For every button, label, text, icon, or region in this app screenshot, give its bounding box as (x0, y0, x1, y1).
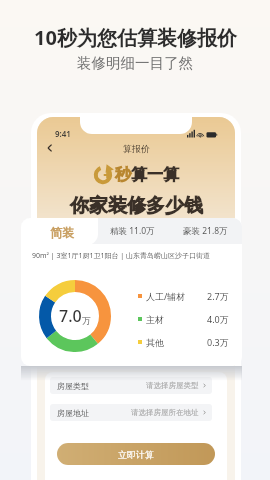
staticText: 精装 11.0万 (110, 225, 155, 237)
button[interactable]: 精装 11.0万 (96, 218, 169, 244)
staticText: 请选择房屋所在地址 (131, 408, 199, 417)
staticText: 90m² | 3室1厅1厨1卫1阳台 | 山东青岛崂山区沙子口街道 (32, 251, 211, 261)
button[interactable]: 房屋类型 (50, 377, 212, 394)
staticText: 7.0 (59, 305, 82, 327)
staticText: 万 (82, 315, 91, 326)
staticText: 请选择房屋类型 (146, 381, 199, 390)
button[interactable]: 豪装 21.8万 (169, 218, 242, 244)
button[interactable]: Back (41, 139, 59, 157)
staticText: 9:41 (55, 128, 71, 139)
staticText: 10秒为您估算装修报价 (34, 24, 237, 51)
staticText: 秒 (115, 165, 131, 185)
staticText: 简装 (50, 225, 74, 240)
staticText: 4.0万 (207, 313, 229, 325)
staticText: 豪装 21.8万 (183, 225, 228, 237)
staticText: 0.3万 (207, 336, 229, 348)
button[interactable]: 立即计算 (57, 443, 215, 465)
staticText: 算报价 (123, 143, 150, 154)
staticText: 其他 (146, 337, 164, 348)
staticText: 2.7万 (207, 290, 229, 302)
staticText: 人工/辅材 (146, 290, 186, 302)
staticText: 算一算 (131, 165, 179, 185)
staticText: 房屋类型 (57, 381, 89, 391)
button[interactable]: 简装 (21, 218, 98, 245)
staticText: 房屋地址 (57, 408, 89, 418)
staticText: 主材 (146, 314, 164, 325)
staticText: 你家装修多少钱 (70, 194, 203, 218)
button[interactable]: 房屋地址 (50, 404, 212, 421)
staticText: 装修明细一目了然 (77, 54, 193, 72)
staticText: 立即计算 (118, 449, 154, 460)
